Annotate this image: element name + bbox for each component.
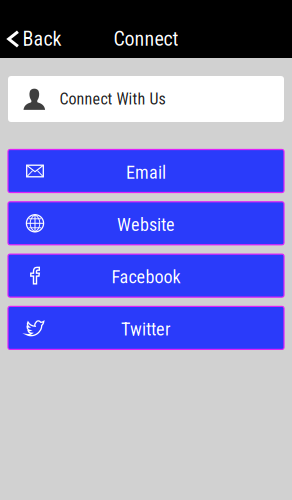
staticText: Website	[117, 214, 175, 235]
button[interactable]: Facebook	[8, 254, 284, 297]
staticText: Twitter	[121, 319, 171, 340]
staticText: Facebook	[111, 266, 180, 288]
button[interactable]: Website	[8, 202, 284, 245]
button[interactable]: Connect With Us	[8, 76, 284, 122]
button[interactable]: Email	[8, 149, 284, 192]
button[interactable]: Back	[0, 21, 72, 57]
button[interactable]: Twitter	[8, 306, 284, 349]
staticText: Back	[23, 27, 62, 51]
staticText: Connect With Us	[60, 90, 166, 108]
staticText: Connect	[113, 27, 178, 51]
staticText: Email	[126, 162, 166, 183]
